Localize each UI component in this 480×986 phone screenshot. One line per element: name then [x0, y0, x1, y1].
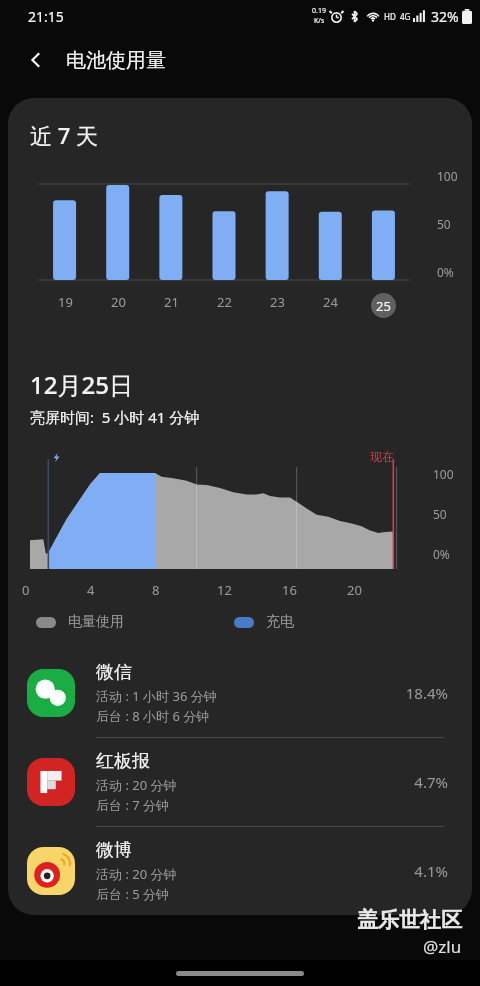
staticText: 亮屏时间: 5 小时 41 分钟	[30, 407, 200, 427]
staticText: 22	[217, 293, 232, 311]
staticText: 25	[376, 297, 391, 315]
staticText: 4G	[400, 11, 411, 22]
staticText: 8	[152, 581, 160, 599]
staticText: 21:15	[28, 7, 64, 26]
button[interactable]: 微博	[8, 827, 472, 915]
staticText: 后台 : 8 小时 6 分钟	[96, 707, 210, 725]
staticText: 4	[87, 581, 95, 599]
staticText: 16	[282, 581, 297, 599]
staticText: 0.19	[312, 6, 326, 16]
staticText: 12月25日	[30, 368, 133, 401]
staticText: @zlu	[423, 935, 462, 958]
staticText: 后台 : 7 分钟	[96, 796, 170, 814]
staticText: 19	[58, 293, 73, 311]
staticText: 红板报	[96, 750, 150, 773]
staticText: 12	[217, 581, 232, 599]
staticText: 20	[111, 293, 126, 311]
staticText: 18.4%	[405, 683, 448, 703]
staticText: 充电	[266, 613, 294, 631]
staticText: 电池使用量	[66, 48, 166, 73]
staticText: HD	[384, 11, 396, 22]
staticText: 20	[347, 581, 362, 599]
staticText: 50	[433, 506, 447, 522]
staticText: 0%	[433, 546, 450, 562]
staticText: K/s	[314, 16, 325, 26]
button[interactable]: 微信	[8, 649, 472, 737]
staticText: 现在	[370, 449, 394, 464]
staticText: 32%	[431, 7, 459, 26]
staticText: 100	[433, 466, 454, 482]
staticText: 4.1%	[414, 861, 448, 881]
staticText: 活动 : 20 分钟	[96, 776, 177, 794]
staticText: 盖乐世社区	[357, 907, 462, 933]
staticText: 活动 : 20 分钟	[96, 865, 177, 883]
staticText: 23	[270, 293, 285, 311]
staticText: 电量使用	[68, 613, 124, 631]
staticText: 4.7%	[414, 772, 448, 792]
staticText: 100	[437, 168, 458, 184]
button[interactable]: 红板报	[8, 738, 472, 826]
staticText: 50	[437, 216, 451, 232]
staticText: 微信	[96, 661, 132, 684]
staticText: 后台 : 5 分钟	[96, 885, 170, 903]
staticText: 21	[164, 293, 179, 311]
staticText: 0	[22, 581, 30, 599]
staticText: 活动 : 1 小时 36 分钟	[96, 687, 217, 705]
button[interactable]: 返回	[14, 38, 58, 82]
staticText: 0%	[437, 264, 454, 280]
staticText: 微博	[96, 839, 132, 862]
staticText: 24	[323, 293, 338, 311]
staticText: 近 7 天	[30, 120, 99, 150]
